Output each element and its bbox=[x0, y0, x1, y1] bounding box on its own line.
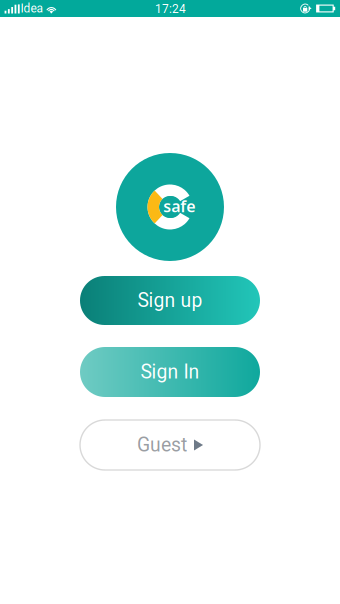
staticText: Idea bbox=[21, 1, 44, 16]
button[interactable]: Sign In bbox=[80, 347, 260, 397]
button[interactable]: Sign up bbox=[80, 276, 260, 325]
staticText: Sign In bbox=[140, 361, 199, 383]
staticText: Sign up bbox=[137, 289, 202, 312]
button[interactable]: Guest bbox=[80, 420, 260, 470]
staticText: 17:24 bbox=[155, 2, 186, 16]
staticText: safe bbox=[163, 195, 195, 217]
staticText: Guest bbox=[137, 434, 187, 456]
